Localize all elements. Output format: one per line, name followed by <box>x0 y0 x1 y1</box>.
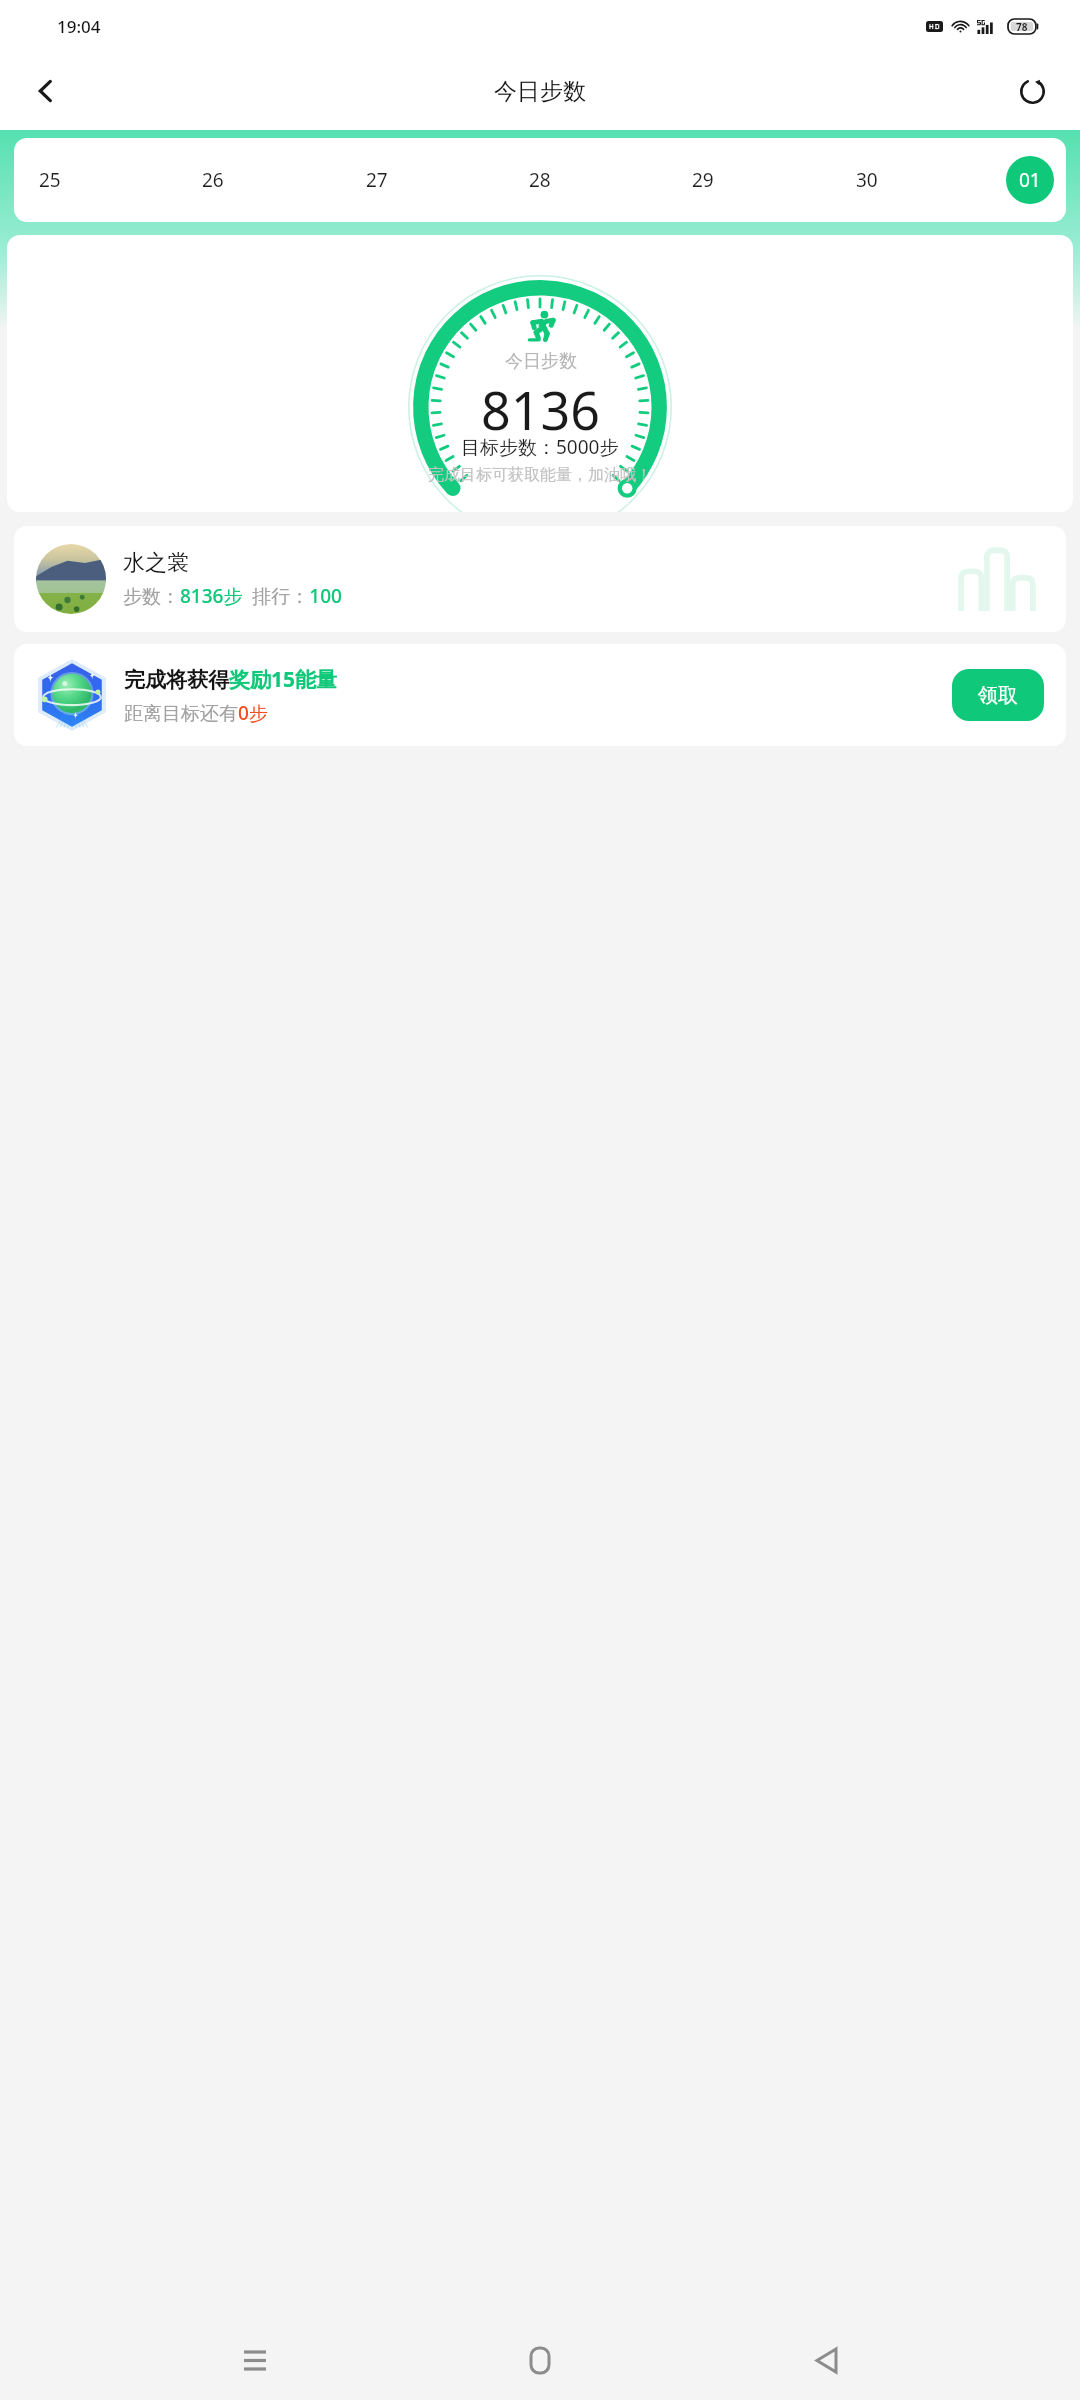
button[interactable]: 25 <box>26 156 74 204</box>
staticText: 目标步数：5000步 <box>461 434 619 460</box>
staticText: 78 <box>1016 20 1028 34</box>
staticText: 29 <box>692 167 714 193</box>
button[interactable]: 27 <box>353 156 401 204</box>
button[interactable]: 26 <box>189 156 237 204</box>
staticText: 8136 <box>481 374 600 445</box>
staticText: 完成将获得奖励15能量 <box>124 665 338 694</box>
button[interactable]: 最近任务 <box>224 2329 286 2391</box>
staticText: 25 <box>39 167 61 193</box>
button[interactable]: 返回 <box>795 2329 857 2391</box>
staticText: 距离目标还有0步 <box>124 700 268 726</box>
button[interactable]: 01 <box>1006 156 1054 204</box>
staticText: 01 <box>1019 167 1041 193</box>
staticText: 完成目标可获取能量，加油哦！ <box>428 465 652 485</box>
staticText: 30 <box>856 167 878 193</box>
staticText: 领取 <box>978 683 1018 708</box>
button[interactable]: 返回 <box>18 63 74 119</box>
staticText: 今日步数 <box>494 77 586 106</box>
staticText: 28 <box>529 167 551 193</box>
staticText: 26 <box>202 167 224 193</box>
staticText: 19:04 <box>57 15 101 38</box>
button[interactable]: 30 <box>843 156 891 204</box>
button[interactable]: 刷新 <box>1004 63 1060 119</box>
staticText: 27 <box>366 167 388 193</box>
staticText: 步数：8136步 排行：100 <box>123 583 342 609</box>
staticText: 水之裳 <box>123 549 189 577</box>
staticText: 今日步数 <box>505 350 577 373</box>
button[interactable]: 28 <box>516 156 564 204</box>
button[interactable]: 主屏幕 <box>509 2329 571 2391</box>
button[interactable]: 29 <box>679 156 727 204</box>
button[interactable]: 水之裳 <box>14 526 1066 632</box>
button[interactable]: 领取 <box>952 669 1044 721</box>
